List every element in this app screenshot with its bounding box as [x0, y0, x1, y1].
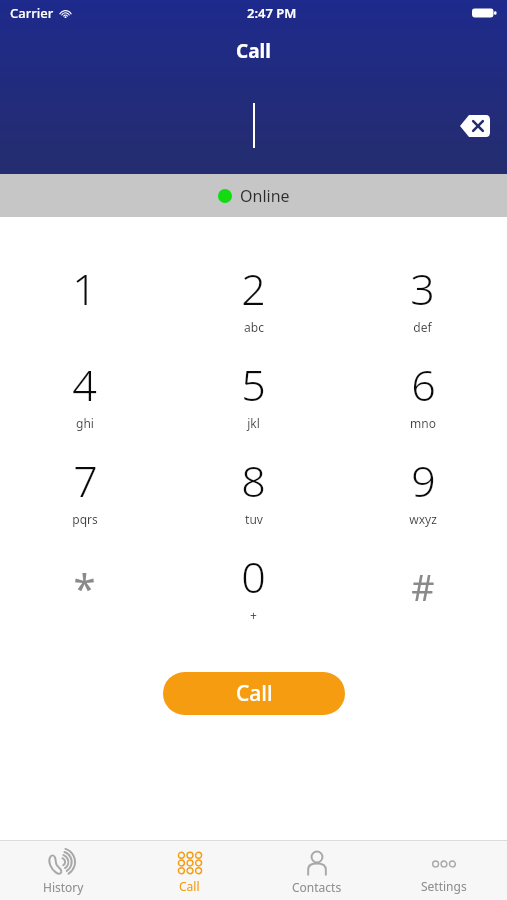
staticText: 7 [73, 451, 98, 510]
button[interactable]: 0 [169, 547, 338, 643]
button[interactable]: Settings [380, 841, 507, 900]
staticText: pqrs [72, 511, 98, 527]
button[interactable]: Call [126, 841, 253, 900]
staticText: Settings [421, 878, 467, 894]
staticText: + [250, 607, 257, 623]
button[interactable]: 1 [0, 259, 169, 355]
staticText: Call [236, 679, 273, 708]
staticText: 1 [72, 259, 97, 318]
staticText: tuv [245, 511, 263, 527]
button[interactable]: 9 [338, 451, 507, 547]
button[interactable]: 7 [0, 451, 169, 547]
staticText: 3 [410, 259, 435, 318]
button[interactable]: Contacts [253, 841, 380, 900]
button[interactable]: 4 [0, 355, 169, 451]
staticText: 2:47 PM [247, 4, 297, 22]
button[interactable]: * [0, 547, 169, 643]
staticText: 2 [241, 259, 266, 318]
button[interactable]: 8 [169, 451, 338, 547]
staticText: 4 [72, 355, 97, 414]
staticText: Contacts [292, 879, 342, 895]
staticText: ghi [76, 415, 94, 431]
staticText: Online [240, 185, 290, 207]
staticText: jkl [247, 415, 260, 431]
button[interactable]: 3 [338, 259, 507, 355]
staticText: wxyz [409, 511, 437, 527]
staticText: def [413, 319, 432, 335]
staticText: Call [179, 878, 200, 894]
button[interactable]: 2 [169, 259, 338, 355]
button[interactable]: # [338, 547, 507, 643]
staticText: # [411, 563, 435, 612]
staticText: 5 [241, 355, 266, 414]
staticText: 8 [241, 451, 266, 510]
staticText: History [43, 879, 84, 895]
staticText: Carrier [10, 4, 54, 22]
button[interactable]: History [0, 841, 126, 900]
staticText: 0 [241, 547, 266, 606]
staticText: abc [244, 319, 264, 335]
staticText: 9 [411, 451, 436, 510]
button[interactable]: 6 [338, 355, 507, 451]
button[interactable]: 5 [169, 355, 338, 451]
staticText: mno [410, 415, 436, 431]
staticText: Call [236, 38, 271, 64]
staticText: 6 [411, 355, 436, 414]
button[interactable]: Call [163, 672, 345, 715]
button[interactable]: Backspace [457, 110, 493, 142]
staticText: * [73, 560, 96, 614]
